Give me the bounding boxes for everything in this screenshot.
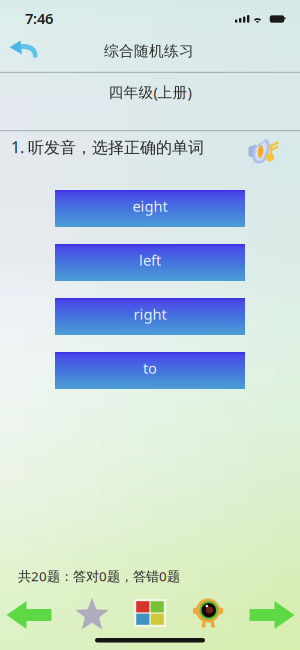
- button[interactable]: Back: [0, 32, 56, 66]
- staticText: 7:46: [25, 8, 53, 28]
- button[interactable]: eight: [55, 190, 245, 226]
- button[interactable]: Play audio: [243, 131, 285, 171]
- staticText: right: [133, 304, 166, 324]
- button[interactable]: left: [55, 244, 245, 280]
- button[interactable]: Previous question: [0, 592, 58, 638]
- staticText: eight: [132, 196, 167, 216]
- button[interactable]: to: [55, 352, 245, 388]
- button[interactable]: Favourite: [63, 591, 121, 637]
- button[interactable]: right: [55, 298, 245, 334]
- staticText: to: [143, 358, 157, 378]
- staticText: 共20题：答对0题，答错0题: [18, 567, 180, 585]
- staticText: left: [139, 250, 161, 270]
- button[interactable]: Next question: [243, 592, 300, 638]
- staticText: 四年级(上册): [108, 82, 191, 102]
- button[interactable]: All questions: [121, 590, 179, 636]
- staticText: 综合随机练习: [104, 42, 194, 60]
- button[interactable]: Mascot: [179, 591, 237, 637]
- staticText: 1. 听发音，选择正确的单词: [11, 136, 204, 158]
